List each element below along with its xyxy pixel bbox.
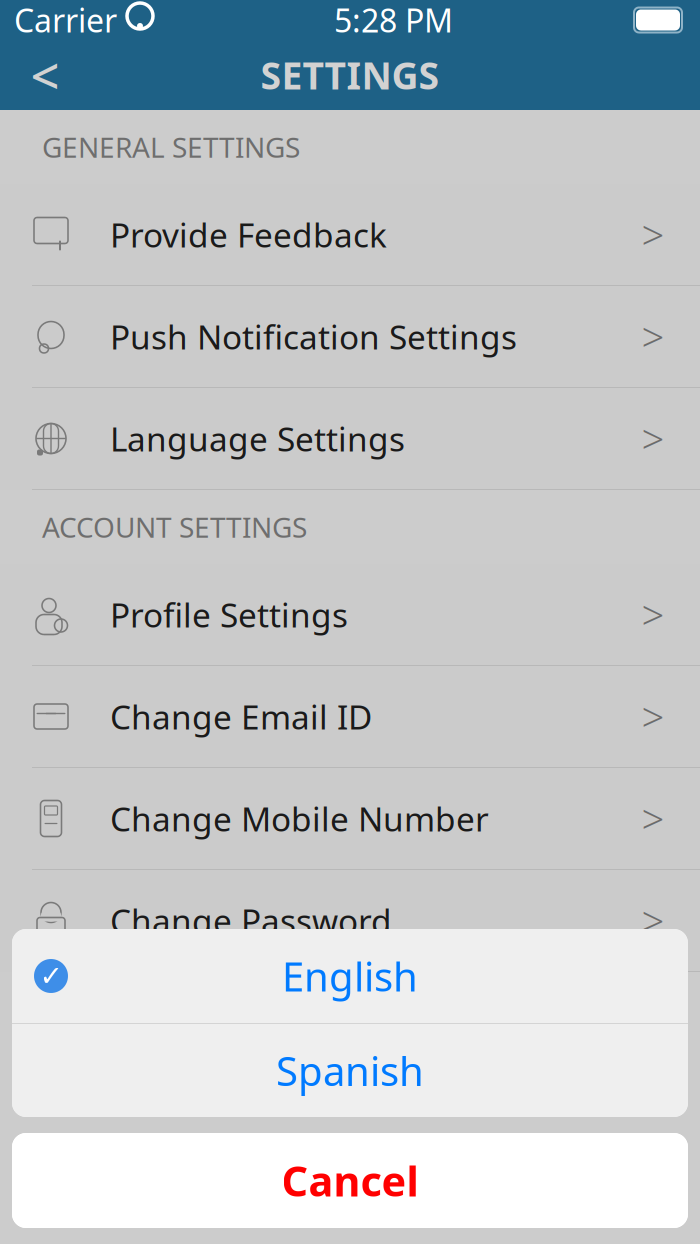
staticText: ✓	[39, 960, 62, 992]
staticText: >	[641, 792, 664, 845]
staticText: Change Password	[110, 898, 392, 943]
button[interactable]: Change Mobile Number	[0, 768, 700, 870]
staticText: Change Email ID	[110, 694, 372, 739]
staticText: Language Settings	[110, 416, 405, 461]
staticText: >	[641, 412, 664, 465]
button[interactable]: Change Email ID	[0, 666, 700, 768]
button[interactable]: Push Notification Settings	[0, 286, 700, 388]
staticText: >	[641, 690, 664, 743]
button[interactable]: Profile Settings	[0, 564, 700, 666]
button[interactable]: Cancel	[12, 1133, 688, 1228]
staticText: Change Mobile Number	[110, 796, 489, 841]
staticText: Profile Settings	[110, 592, 348, 637]
staticText: English	[282, 949, 418, 1002]
button[interactable]: Language Settings	[0, 388, 700, 490]
staticText: GENERAL SETTINGS	[42, 128, 300, 166]
staticText: <	[30, 41, 59, 109]
staticText: ACCOUNT SETTINGS	[42, 508, 307, 546]
staticText: Provide Feedback	[110, 212, 387, 257]
button[interactable]: Change Password	[0, 870, 700, 972]
staticText: TERMS & PRIVACY POLICY	[42, 990, 379, 1028]
staticText: >	[641, 208, 664, 261]
staticText: >	[641, 310, 664, 363]
staticText: Spanish	[276, 1044, 424, 1097]
staticText: SETTINGS	[260, 50, 439, 100]
button[interactable]: English	[12, 929, 688, 1023]
button[interactable]: Provide Feedback	[0, 184, 700, 286]
staticText: >	[641, 588, 664, 641]
button[interactable]: Back	[0, 40, 62, 110]
staticText: Carrier	[14, 0, 117, 41]
button[interactable]: Spanish	[12, 1024, 688, 1117]
staticText: 5:28 PM	[334, 0, 453, 41]
staticText: Push Notification Settings	[110, 314, 517, 359]
staticText: >	[641, 894, 664, 947]
staticText: Cancel	[281, 1153, 418, 1208]
